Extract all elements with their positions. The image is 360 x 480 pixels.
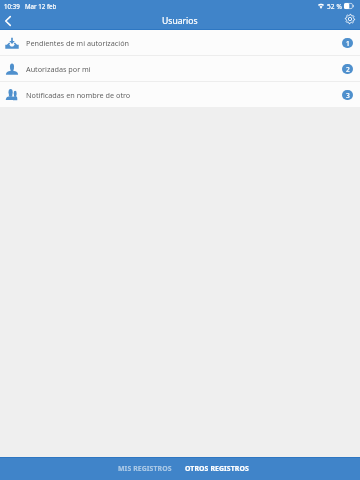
staticText: 10:39 bbox=[4, 2, 20, 10]
button[interactable]: Back bbox=[0, 12, 16, 30]
staticText: Usuarios bbox=[162, 15, 198, 27]
button[interactable]: OTROS REGISTROS bbox=[182, 457, 252, 480]
staticText: Notificadas en nombre de otro bbox=[26, 90, 131, 100]
staticText: Mar 12 feb bbox=[25, 2, 57, 10]
button[interactable]: Autorizadas por mi bbox=[0, 56, 360, 81]
button[interactable]: Pendientes de mi autorización bbox=[0, 30, 360, 55]
staticText: 52 % bbox=[327, 2, 342, 11]
button[interactable]: Notificadas en nombre de otro bbox=[0, 82, 360, 107]
button[interactable]: MIS REGISTROS bbox=[115, 457, 175, 480]
staticText: Autorizadas por mi bbox=[26, 64, 91, 74]
button[interactable]: Settings bbox=[340, 12, 360, 30]
staticText: Pendientes de mi autorización bbox=[26, 38, 129, 48]
staticText: 2 bbox=[346, 65, 350, 74]
staticText: 1 bbox=[346, 39, 350, 48]
staticText: MIS REGISTROS bbox=[118, 464, 172, 473]
staticText: OTROS REGISTROS bbox=[185, 464, 249, 473]
staticText: 3 bbox=[346, 91, 350, 100]
